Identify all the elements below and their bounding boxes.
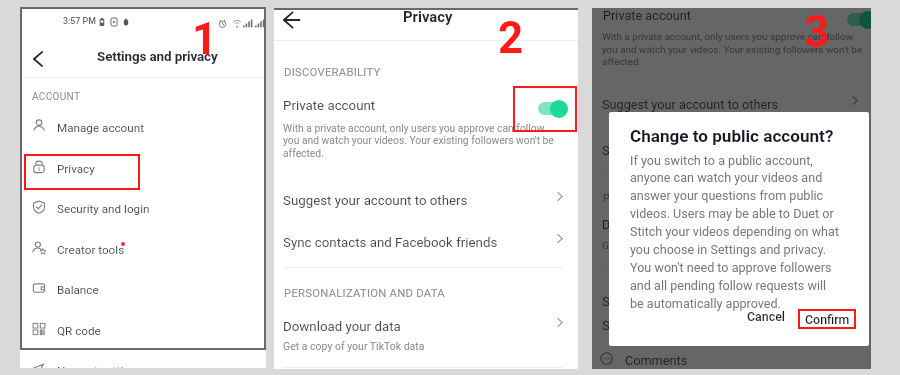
staticText: Privacy bbox=[57, 162, 95, 176]
staticText: Get a copy of your TikTok data bbox=[283, 340, 425, 352]
staticText: 3:57 PM bbox=[63, 16, 96, 26]
staticText: 3 bbox=[804, 8, 830, 58]
staticText: Suggest your account to others bbox=[602, 97, 779, 112]
staticText: If you switch to a public account, anyon… bbox=[630, 153, 842, 311]
button[interactable]: Privacy bbox=[20, 147, 266, 188]
staticText: Sync contacts and Facebook friends bbox=[602, 143, 807, 158]
staticText: 1 bbox=[192, 13, 218, 65]
staticText: Get a copy of your TikTok data bbox=[602, 240, 736, 252]
staticText: QR code bbox=[57, 324, 101, 338]
button[interactable]: Manage account bbox=[20, 106, 266, 147]
staticText: Private account bbox=[283, 98, 376, 114]
staticText: Comments bbox=[625, 353, 688, 368]
staticText: Confirm bbox=[805, 312, 850, 327]
staticText: Change to public account? bbox=[630, 126, 834, 146]
staticText: Security and login bbox=[57, 202, 150, 216]
staticText: Sync contacts and Facebook friends bbox=[283, 235, 498, 251]
staticText: Creator tools bbox=[57, 243, 125, 257]
staticText: PERSONALIZATION AND DATA bbox=[284, 287, 445, 300]
button[interactable]: Download your data bbox=[274, 315, 578, 341]
staticText: PERSONALIZATION AND DATA bbox=[603, 192, 758, 205]
staticText: Download your data bbox=[602, 217, 715, 232]
staticText: With a private account, only users you a… bbox=[602, 31, 870, 67]
staticText: With a private account, only users you a… bbox=[283, 122, 560, 160]
staticText: 2 bbox=[498, 12, 524, 64]
staticText: Balance bbox=[57, 283, 99, 297]
staticText: Suggest your account to others bbox=[602, 294, 779, 309]
button[interactable]: Creator tools bbox=[20, 228, 266, 269]
staticText: Manage account bbox=[57, 121, 145, 135]
button[interactable]: Security and login bbox=[20, 187, 266, 228]
button[interactable]: QR code bbox=[20, 309, 266, 350]
staticText: Nearest settings bbox=[57, 364, 143, 368]
button[interactable]: Suggest your account to others bbox=[274, 189, 578, 215]
button[interactable]: Sync contacts and Facebook friends bbox=[274, 231, 578, 257]
staticText: Cancel bbox=[747, 309, 786, 324]
staticText: Privacy bbox=[403, 8, 453, 25]
button[interactable]: Back bbox=[26, 47, 50, 71]
staticText: Private account bbox=[603, 8, 691, 23]
button[interactable]: Cancel bbox=[740, 305, 792, 327]
staticText: Sync contacts and Facebook friends bbox=[602, 318, 807, 333]
button[interactable]: Back bbox=[279, 8, 303, 32]
staticText: Settings and privacy bbox=[97, 49, 218, 65]
button[interactable]: Confirm bbox=[798, 309, 856, 329]
staticText: ACCOUNT bbox=[32, 91, 81, 103]
button[interactable]: Balance bbox=[20, 268, 266, 309]
staticText: Download your data bbox=[283, 319, 401, 335]
staticText: Suggest your account to others bbox=[283, 193, 468, 209]
staticText: DISCOVERABILITY bbox=[284, 66, 381, 79]
